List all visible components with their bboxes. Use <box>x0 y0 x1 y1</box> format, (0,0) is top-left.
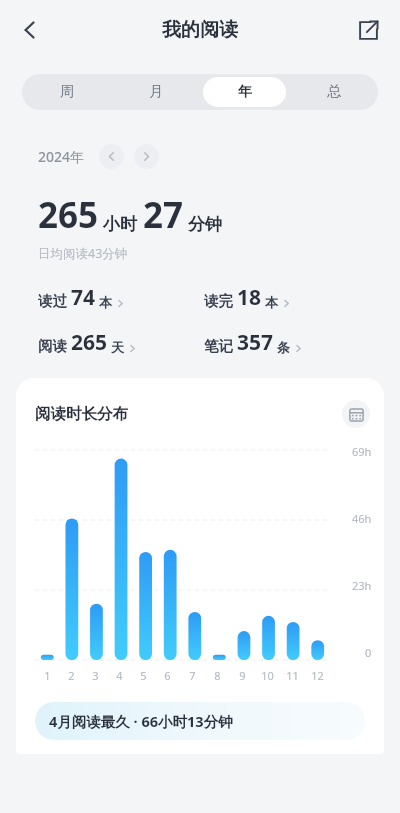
button[interactable]: Back <box>6 6 54 54</box>
staticText: 74 <box>71 283 96 312</box>
staticText: 1 <box>44 668 51 683</box>
staticText: 笔记 <box>204 337 233 355</box>
button[interactable]: 阅读 <box>38 328 200 357</box>
staticText: 日均阅读43分钟 <box>38 245 128 262</box>
staticText: 4 <box>116 668 123 683</box>
button[interactable]: Previous year <box>99 144 124 169</box>
staticText: 69h <box>352 444 372 459</box>
staticText: 357 <box>237 328 274 357</box>
button[interactable]: Calendar <box>342 400 370 428</box>
staticText: 6 <box>164 668 171 683</box>
staticText: 27 <box>143 191 184 239</box>
staticText: 12 <box>311 668 324 683</box>
button[interactable]: 月 <box>114 77 197 107</box>
staticText: 11 <box>286 668 299 683</box>
staticText: 本 <box>99 294 112 310</box>
button[interactable]: 总 <box>292 77 375 107</box>
staticText: 9 <box>239 668 246 683</box>
staticText: 条 <box>277 339 290 355</box>
button[interactable]: 笔记 <box>204 328 400 357</box>
staticText: 天 <box>111 339 124 355</box>
staticText: 总 <box>327 83 341 101</box>
staticText: 周 <box>60 83 74 101</box>
staticText: 我的阅读 <box>162 18 238 42</box>
staticText: 10 <box>261 668 274 683</box>
button[interactable]: Next year <box>134 144 159 169</box>
button[interactable]: 年 <box>203 77 286 107</box>
staticText: 2024年 <box>38 147 85 166</box>
button[interactable]: 周 <box>25 77 108 107</box>
staticText: 年 <box>238 83 252 101</box>
button[interactable]: Share <box>346 8 390 52</box>
staticText: 分钟 <box>188 214 222 235</box>
staticText: 4月阅读最久 · 66小时13分钟 <box>49 711 233 731</box>
staticText: 46h <box>352 511 372 526</box>
staticText: 18 <box>237 283 262 312</box>
staticText: 3 <box>92 668 99 683</box>
button[interactable]: 4月阅读最久 · 66小时13分钟 <box>35 702 365 740</box>
staticText: 265 <box>71 328 108 357</box>
staticText: 小时 <box>103 214 137 235</box>
staticText: 0 <box>365 645 372 660</box>
button[interactable]: 读完 <box>204 283 400 312</box>
staticText: 阅读时长分布 <box>35 404 128 424</box>
staticText: 2 <box>68 668 75 683</box>
staticText: 8 <box>214 668 221 683</box>
staticText: 265 <box>38 191 99 239</box>
staticText: 读完 <box>204 292 233 310</box>
staticText: 23h <box>352 578 372 593</box>
staticText: 5 <box>140 668 147 683</box>
staticText: 阅读 <box>38 337 67 355</box>
button[interactable]: 读过 <box>38 283 200 312</box>
staticText: 本 <box>265 294 278 310</box>
staticText: 月 <box>149 83 163 101</box>
staticText: 读过 <box>38 292 67 310</box>
staticText: 7 <box>189 668 196 683</box>
